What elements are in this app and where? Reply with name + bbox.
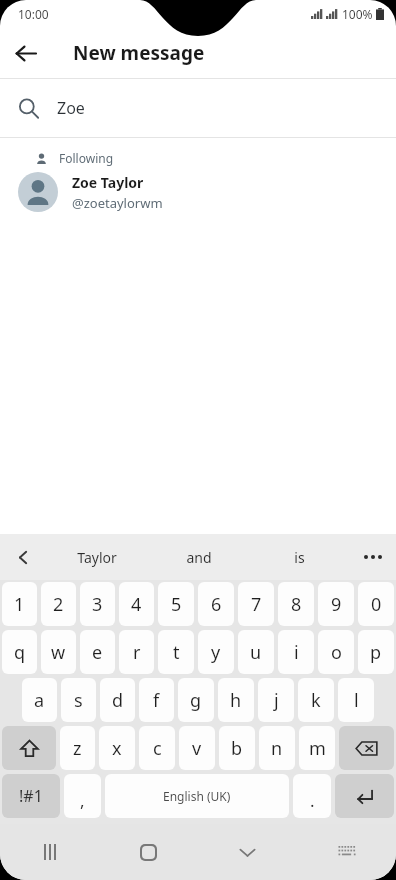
button[interactable]: p (358, 630, 394, 674)
button[interactable]: !#1 (2, 774, 60, 818)
staticText: is (294, 548, 305, 567)
staticText: g (190, 688, 202, 713)
staticText: Zoe Taylor (72, 173, 144, 192)
button[interactable]: k (298, 678, 334, 722)
button[interactable]: t (158, 630, 194, 674)
button[interactable]: Switch keyboard (297, 824, 396, 880)
button[interactable]: q (2, 630, 37, 674)
button[interactable]: g (178, 678, 214, 722)
staticText: 9 (331, 592, 342, 617)
button[interactable]: English (UK) (105, 774, 289, 818)
staticText: Taylor (77, 548, 117, 567)
staticText: o (331, 640, 342, 665)
staticText: !#1 (19, 785, 43, 807)
button[interactable]: , (64, 774, 101, 818)
button[interactable]: 4 (119, 582, 154, 626)
staticText: , (80, 789, 85, 812)
button[interactable]: y (198, 630, 234, 674)
button[interactable]: Following (0, 138, 396, 224)
button[interactable]: 0 (358, 582, 394, 626)
staticText: 0 (371, 592, 382, 617)
button[interactable]: 7 (238, 582, 274, 626)
button[interactable]: is (249, 534, 350, 580)
button[interactable]: m (299, 726, 335, 770)
button[interactable]: h (218, 678, 254, 722)
button[interactable]: 8 (278, 582, 314, 626)
staticText: @zoetaylorwm (72, 194, 163, 212)
button[interactable]: 2 (41, 582, 76, 626)
button[interactable]: 3 (80, 582, 115, 626)
staticText: 1 (14, 592, 25, 617)
button[interactable]: b (219, 726, 255, 770)
staticText: p (370, 640, 382, 665)
staticText: e (92, 640, 103, 665)
button[interactable]: u (238, 630, 274, 674)
staticText: u (250, 640, 262, 665)
button[interactable]: z (60, 726, 95, 770)
button[interactable]: Backspace (339, 726, 394, 770)
staticText: d (112, 688, 124, 713)
staticText: 6 (211, 592, 222, 617)
staticText: b (231, 736, 243, 761)
button[interactable]: 1 (2, 582, 37, 626)
staticText: 4 (131, 592, 142, 617)
button[interactable]: Back (0, 28, 50, 78)
button[interactable]: More options (350, 534, 396, 580)
button[interactable]: j (258, 678, 294, 722)
staticText: q (14, 640, 26, 665)
staticText: Following (59, 150, 114, 166)
staticText: 7 (251, 592, 262, 617)
button[interactable]: Previous (0, 534, 46, 580)
button[interactable]: Recents (0, 824, 99, 880)
staticText: x (112, 736, 122, 761)
staticText: s (74, 688, 83, 713)
button[interactable]: d (100, 678, 135, 722)
button[interactable]: Zoe (0, 79, 396, 137)
button[interactable]: r (119, 630, 154, 674)
staticText: 10:00 (18, 6, 49, 22)
staticText: j (274, 688, 279, 713)
button[interactable]: v (179, 726, 215, 770)
staticText: c (153, 736, 162, 761)
staticText: . (310, 789, 315, 812)
button[interactable]: Enter (335, 774, 394, 818)
button[interactable]: a (22, 678, 57, 722)
staticText: t (173, 640, 180, 665)
button[interactable]: o (318, 630, 354, 674)
staticText: a (34, 688, 45, 713)
button[interactable]: Hide keyboard (198, 824, 297, 880)
button[interactable]: Shift (2, 726, 56, 770)
button[interactable]: 9 (318, 582, 354, 626)
button[interactable]: x (99, 726, 135, 770)
staticText: m (309, 736, 326, 761)
staticText: 5 (171, 592, 182, 617)
button[interactable]: 6 (198, 582, 234, 626)
button[interactable]: Home (99, 824, 198, 880)
staticText: y (211, 640, 221, 665)
button[interactable]: 5 (158, 582, 194, 626)
button[interactable]: s (61, 678, 96, 722)
button[interactable]: . (293, 774, 331, 818)
button[interactable]: i (278, 630, 314, 674)
staticText: i (294, 640, 299, 665)
button[interactable]: w (41, 630, 76, 674)
staticText: Zoe (57, 97, 85, 119)
staticText: English (UK) (163, 788, 231, 804)
button[interactable]: n (259, 726, 295, 770)
staticText: r (133, 640, 141, 665)
staticText: l (354, 688, 359, 713)
button[interactable]: and (148, 534, 249, 580)
button[interactable]: l (338, 678, 374, 722)
staticText: New message (73, 40, 205, 66)
staticText: f (153, 688, 160, 713)
staticText: n (271, 736, 283, 761)
staticText: 100% (342, 6, 373, 22)
button[interactable]: c (139, 726, 175, 770)
button[interactable]: Taylor (46, 534, 148, 580)
button[interactable]: e (80, 630, 115, 674)
staticText: 8 (291, 592, 302, 617)
staticText: h (230, 688, 242, 713)
staticText: z (73, 736, 82, 761)
staticText: 2 (53, 592, 64, 617)
button[interactable]: f (139, 678, 174, 722)
